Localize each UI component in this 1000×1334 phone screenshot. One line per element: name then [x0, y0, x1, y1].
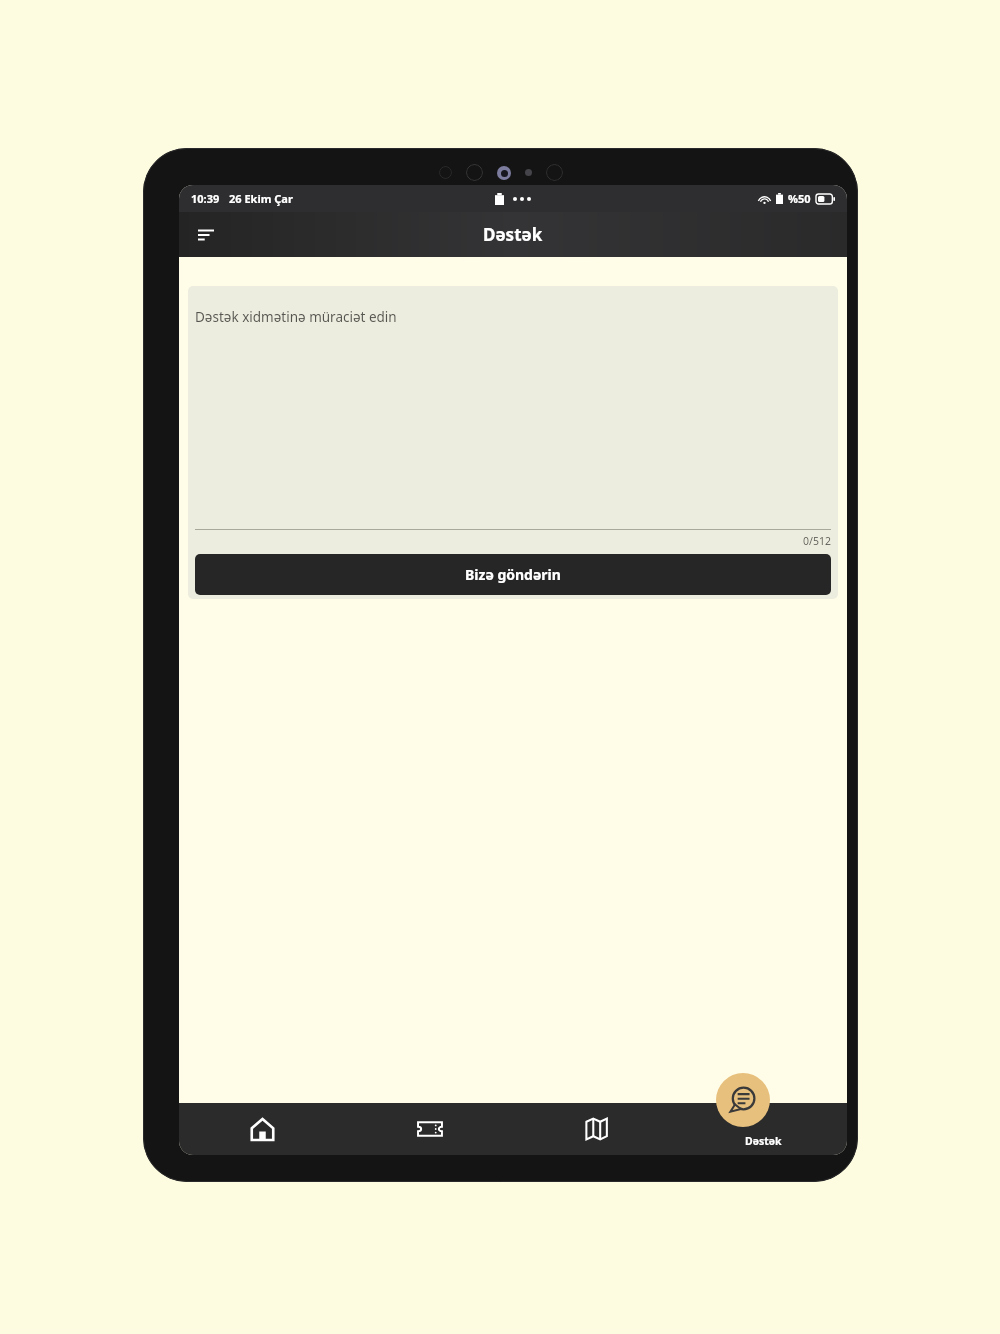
button[interactable]: Tickets	[346, 1103, 513, 1155]
staticText: Bizə göndərin	[465, 565, 561, 584]
button[interactable]: Map	[513, 1103, 680, 1155]
button[interactable]: Bizə göndərin	[195, 554, 831, 595]
button[interactable]: Dəstək	[680, 1103, 847, 1155]
button[interactable]: Dəstək	[716, 1073, 770, 1127]
staticText: Dəstək xidmətinə müraciət edin	[195, 308, 397, 326]
staticText: 26 Ekim Çar	[229, 191, 293, 206]
button[interactable]: Dəstək xidmətinə müraciət edin	[195, 308, 831, 529]
staticText: Dəstək	[745, 1134, 782, 1148]
button[interactable]: Menu	[187, 216, 225, 254]
staticText: 0/512	[803, 534, 831, 548]
staticText: 10:39	[191, 191, 220, 206]
staticText: %50	[788, 191, 811, 206]
button[interactable]: Home	[179, 1103, 346, 1155]
staticText: Dəstək	[483, 223, 543, 246]
